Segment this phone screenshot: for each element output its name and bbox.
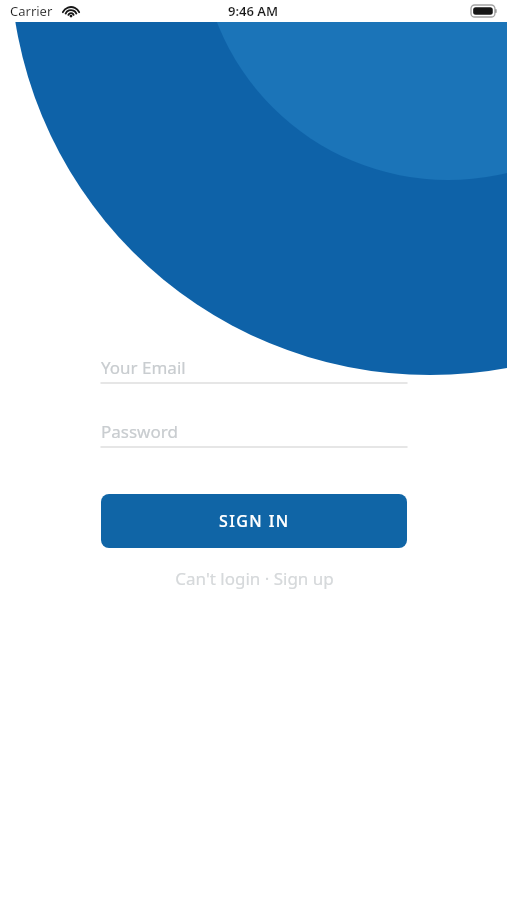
button[interactable]: Password (101, 416, 407, 446)
other: Wi-Fi signal (62, 4, 80, 18)
button[interactable]: Your Email (101, 352, 407, 382)
staticText: SIGN IN (219, 510, 290, 532)
staticText: Carrier (10, 2, 53, 20)
staticText: Your Email (101, 356, 186, 379)
staticText: Can't login · Sign up (175, 567, 334, 590)
other: Battery full (471, 5, 497, 17)
staticText: 9:46 AM (228, 2, 279, 20)
staticText: Password (101, 420, 178, 443)
button[interactable]: Can't login · Sign up (101, 560, 407, 596)
button[interactable]: SIGN IN (101, 494, 407, 548)
